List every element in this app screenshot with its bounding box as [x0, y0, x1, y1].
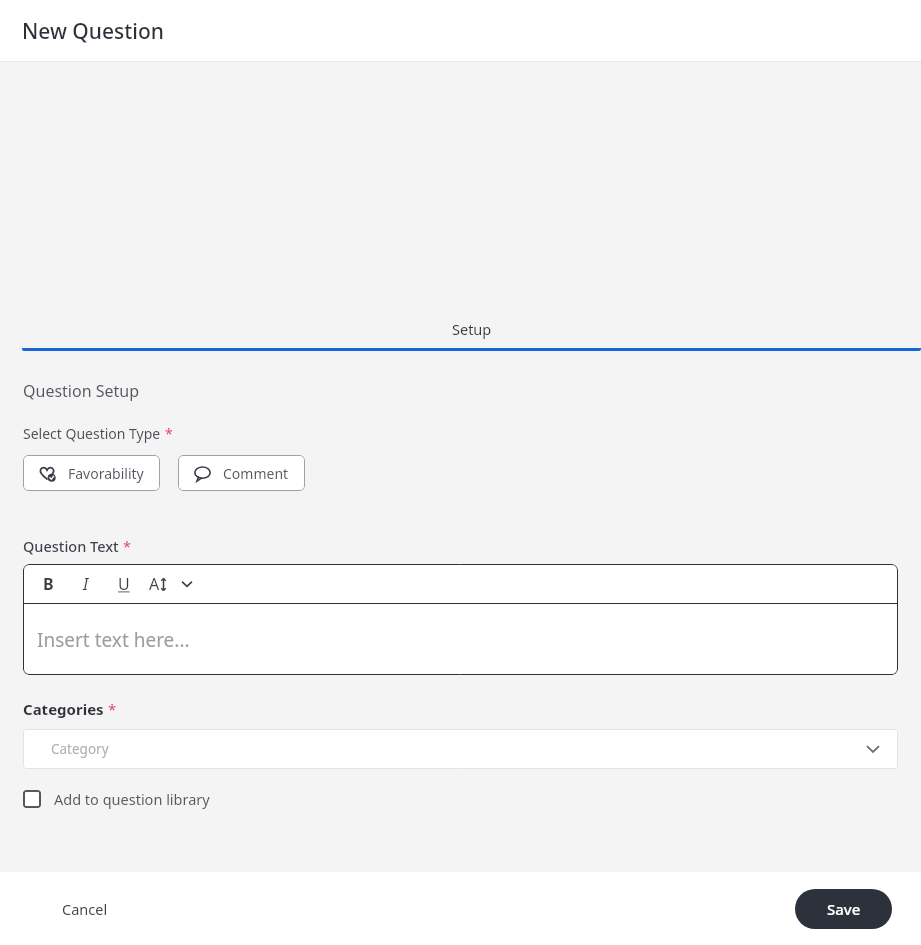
staticText: Setup: [452, 319, 492, 339]
staticText: Save: [827, 899, 861, 919]
button[interactable]: Font size options: [177, 574, 197, 594]
button[interactable]: Setup: [22, 319, 921, 351]
button[interactable]: Add to question library: [23, 789, 210, 809]
staticText: *: [123, 536, 131, 556]
button[interactable]: Favorability: [23, 455, 160, 491]
staticText: Select Question Type: [23, 424, 161, 443]
staticText: Cancel: [62, 899, 108, 919]
button[interactable]: Font size: [149, 573, 167, 595]
staticText: Comment: [223, 464, 289, 483]
staticText: A: [149, 573, 160, 595]
staticText: Add to question library: [54, 789, 210, 809]
staticText: *: [108, 699, 117, 719]
staticText: Insert text here...: [37, 627, 190, 653]
staticText: Category: [51, 740, 109, 758]
staticText: U: [118, 573, 130, 595]
button[interactable]: Cancel: [40, 889, 130, 929]
staticText: Favorability: [68, 464, 144, 483]
staticText: B: [43, 573, 54, 595]
staticText: Question Setup: [23, 380, 140, 402]
button[interactable]: Save: [795, 889, 892, 929]
button[interactable]: U: [113, 573, 135, 595]
staticText: New Question: [22, 17, 164, 46]
button[interactable]: Category: [23, 729, 898, 769]
staticText: *: [165, 424, 173, 443]
staticText: Categories: [23, 699, 104, 719]
button[interactable]: Insert text here...: [23, 604, 898, 675]
button[interactable]: Comment: [178, 455, 305, 491]
staticText: Question Text: [23, 536, 119, 556]
staticText: I: [83, 573, 89, 595]
button[interactable]: I: [75, 573, 97, 595]
button[interactable]: B: [37, 573, 59, 595]
